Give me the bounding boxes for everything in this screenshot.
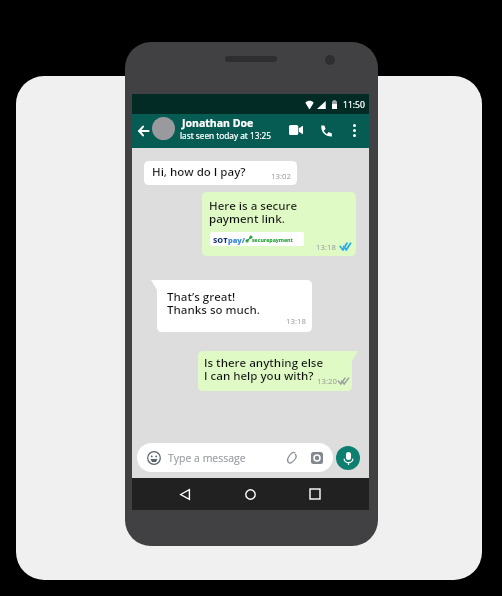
staticText: 13:18 — [316, 242, 336, 253]
staticText: Thanks so much. — [167, 302, 260, 318]
button[interactable]: Here is a secure — [202, 192, 356, 256]
button[interactable]: Attach — [281, 447, 302, 468]
staticText: last seen today at 13:25 — [180, 130, 272, 141]
staticText: Is there anything else — [204, 355, 324, 371]
button[interactable]: Home — [238, 482, 262, 506]
staticText: That’s great! — [167, 289, 236, 305]
staticText: 13:02 — [271, 171, 291, 182]
button[interactable]: More options — [342, 113, 366, 147]
staticText: 11:50 — [343, 99, 365, 111]
staticText: payment link. — [209, 211, 285, 227]
button[interactable]: Voice message — [336, 446, 360, 470]
button[interactable]: Back — [173, 482, 197, 506]
button[interactable]: Recents — [303, 482, 327, 506]
button[interactable]: Camera — [306, 447, 327, 468]
button[interactable]: Back — [132, 114, 154, 148]
staticText: Type a message — [168, 451, 246, 465]
button[interactable]: That’s great! — [157, 280, 312, 332]
staticText: pay/ — [228, 235, 246, 245]
button[interactable]: Hi, how do I pay? — [144, 161, 297, 185]
staticText: 13:20 — [317, 376, 337, 387]
staticText: securepayment — [252, 236, 293, 243]
button[interactable]: Type a message — [137, 443, 333, 472]
button[interactable]: SOT — [210, 232, 304, 246]
staticText: Hi, how do I pay? — [152, 164, 246, 180]
staticText: SOT — [213, 235, 228, 245]
button[interactable]: Is there anything else — [198, 351, 352, 391]
staticText: I can help you with? — [204, 368, 314, 384]
staticText: Here is a secure — [209, 198, 298, 214]
button[interactable]: Video call — [282, 113, 309, 147]
button[interactable]: Call — [313, 114, 338, 148]
staticText: Jonathan Doe — [182, 116, 254, 130]
staticText: 13:18 — [286, 316, 306, 327]
